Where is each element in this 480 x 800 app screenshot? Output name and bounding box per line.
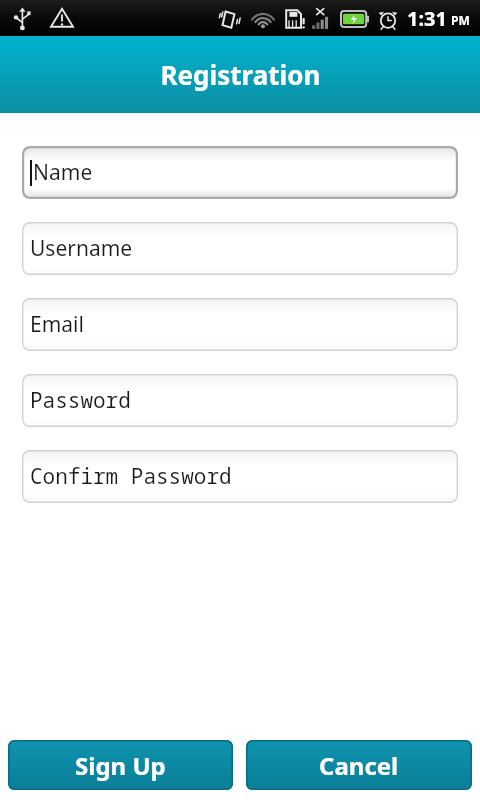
staticText: Password [30, 386, 131, 415]
button[interactable]: Name [22, 146, 458, 199]
button[interactable]: Sign Up [8, 740, 233, 790]
staticText: Name [33, 158, 93, 187]
staticText: Confirm Password [30, 462, 232, 491]
button[interactable]: Confirm Password [22, 450, 458, 503]
staticText: Sign Up [75, 749, 166, 782]
button[interactable]: Username [22, 222, 458, 275]
staticText: Username [30, 234, 133, 263]
staticText: 1:31 [407, 5, 447, 32]
staticText: Cancel [319, 749, 399, 782]
staticText: Registration [160, 57, 321, 92]
staticText: Email [30, 310, 84, 339]
staticText: PM [451, 12, 470, 28]
button[interactable]: Email [22, 298, 458, 351]
button[interactable]: Password [22, 374, 458, 427]
button[interactable]: Cancel [246, 740, 472, 790]
